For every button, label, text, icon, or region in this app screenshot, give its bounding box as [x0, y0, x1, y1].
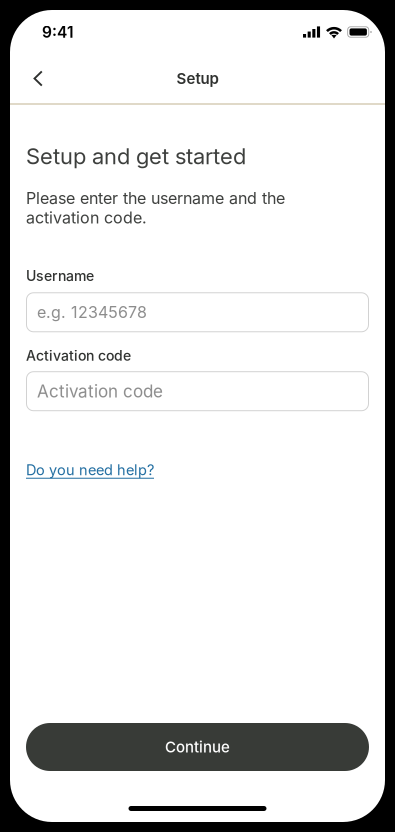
- button[interactable]: e.g. 12345678: [26, 292, 369, 332]
- staticText: Activation code: [37, 381, 163, 401]
- staticText: Activation code: [26, 347, 131, 364]
- button[interactable]: Activation code: [26, 371, 369, 411]
- staticText: Username: [26, 267, 94, 284]
- button[interactable]: Back: [19, 56, 57, 100]
- button[interactable]: Do you need help?: [26, 461, 154, 479]
- staticText: Setup: [176, 69, 218, 87]
- staticText: 9:41: [42, 23, 74, 41]
- staticText: Please enter the username and the activa…: [26, 189, 285, 227]
- staticText: Continue: [165, 738, 230, 756]
- staticText: Do you need help?: [26, 461, 154, 479]
- button[interactable]: Continue: [26, 723, 369, 771]
- staticText: Setup and get started: [26, 143, 246, 170]
- staticText: e.g. 12345678: [37, 303, 147, 322]
